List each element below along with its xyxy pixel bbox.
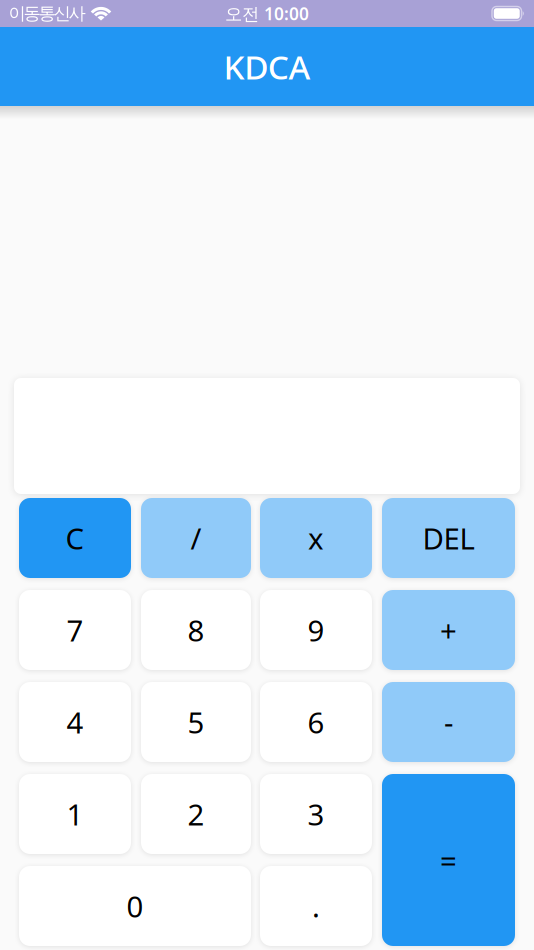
staticText: 1 <box>66 794 83 833</box>
button[interactable]: 0 <box>19 866 251 946</box>
button[interactable]: 4 <box>19 682 131 762</box>
staticText: 4 <box>66 702 83 741</box>
button[interactable]: DEL <box>382 498 515 578</box>
button[interactable]: - <box>382 682 515 762</box>
button[interactable]: + <box>382 590 515 670</box>
button[interactable]: / <box>141 498 251 578</box>
staticText: + <box>440 610 457 649</box>
button[interactable]: = <box>382 774 515 946</box>
staticText: x <box>308 518 324 557</box>
button[interactable]: 8 <box>141 590 251 670</box>
button[interactable]: . <box>260 866 372 946</box>
button[interactable]: 2 <box>141 774 251 854</box>
staticText: 오전 10:00 <box>225 2 309 25</box>
staticText: 0 <box>126 886 143 925</box>
staticText: 6 <box>307 702 324 741</box>
button[interactable]: 1 <box>19 774 131 854</box>
button[interactable]: 9 <box>260 590 372 670</box>
staticText: . <box>312 886 320 925</box>
button[interactable]: 3 <box>260 774 372 854</box>
button[interactable]: C <box>19 498 131 578</box>
staticText: / <box>190 518 201 557</box>
staticText: - <box>444 702 453 741</box>
staticText: 2 <box>187 794 204 833</box>
staticText: 9 <box>307 610 324 649</box>
staticText: KDCA <box>223 44 310 89</box>
staticText: 5 <box>187 702 204 741</box>
staticText: 이동통신사 <box>8 3 85 24</box>
button[interactable]: x <box>260 498 372 578</box>
button[interactable]: 6 <box>260 682 372 762</box>
staticText: C <box>65 518 84 557</box>
staticText: 8 <box>187 610 204 649</box>
staticText: = <box>440 840 457 879</box>
staticText: DEL <box>422 518 474 557</box>
button[interactable]: 7 <box>19 590 131 670</box>
staticText: 7 <box>66 610 83 649</box>
staticText: 3 <box>307 794 324 833</box>
button[interactable]: 5 <box>141 682 251 762</box>
